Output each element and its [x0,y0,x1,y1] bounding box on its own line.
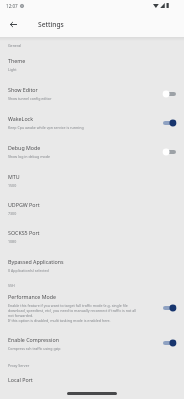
staticText: Enable this feature if you want to targe… [8,303,137,323]
staticText: Compress ssh traffic using gzip [8,346,61,351]
staticText: Bypassed Applications [8,258,64,265]
staticText: Settings [38,20,64,29]
button[interactable]: Back [0,12,26,36]
staticText: 12:07 [6,3,18,9]
button[interactable]: Bypassed Applications [0,250,184,280]
staticText: Show tunnel config editor [8,96,52,101]
staticText: Light [8,67,17,72]
button[interactable]: UDPGW Port [0,194,184,222]
staticText: Theme [8,57,26,64]
staticText: Show log in debug mode [8,154,50,159]
button[interactable]: Local Port [0,369,184,387]
staticText: Show Editor [8,86,38,93]
button[interactable]: Debug Mode [0,137,184,166]
staticText: 1500 [8,183,17,188]
staticText: 0 Application(s) selected [8,268,49,273]
staticText: WakeLock [8,115,33,122]
button[interactable]: Theme [0,50,184,79]
staticText: 1080 [8,239,17,244]
button[interactable]: WakeLock [0,108,184,137]
staticText: MTU [8,173,20,180]
staticText: Keep Cpu awake while vpn service is runn… [8,125,84,130]
button[interactable]: Performance Mode [0,288,184,328]
staticText: SSH [8,283,15,288]
staticText: Enable Compression [8,336,59,343]
staticText: SOCKS5 Port [8,229,40,236]
button[interactable]: Enable Compression [0,328,184,358]
button[interactable]: SOCKS5 Port [0,222,184,250]
button[interactable]: Show Editor [0,79,184,108]
staticText: UDPGW Port [8,201,40,208]
button[interactable]: MTU [0,166,184,194]
staticText: Performance Mode [8,293,56,300]
staticText: Debug Mode [8,144,41,151]
staticText: 7300 [8,211,17,216]
staticText: Local Port [8,376,33,383]
staticText: General [8,43,22,48]
staticText: Proxy Server [8,363,30,368]
